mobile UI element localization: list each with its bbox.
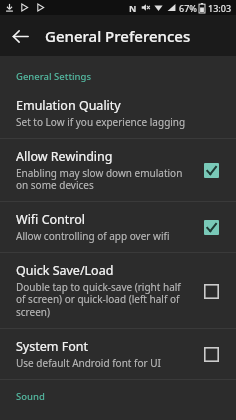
button[interactable]: Back — [0, 16, 40, 56]
staticText: Double tap to quick-save (right half of … — [16, 280, 190, 319]
staticText: Allow controlling of app over wifi — [16, 229, 170, 243]
staticText: Use default Android font for UI — [16, 356, 161, 370]
staticText: Enabling may slow down emulation on some… — [16, 166, 190, 192]
staticText: 67% — [179, 2, 197, 14]
staticText: 13:03 — [208, 2, 232, 14]
staticText: Allow Rewinding — [16, 148, 113, 165]
button[interactable]: Emulation Quality — [0, 88, 236, 138]
staticText: System Font — [16, 338, 89, 355]
button[interactable]: Wifi Control — [0, 202, 236, 252]
button[interactable]: Checked — [198, 214, 224, 240]
button[interactable]: Quick Save/Load — [0, 253, 236, 328]
button[interactable]: System Font — [0, 329, 236, 379]
staticText: N — [129, 2, 137, 14]
staticText: Emulation Quality — [16, 97, 121, 114]
staticText: Wifi Control — [16, 211, 86, 228]
staticText: General Settings — [16, 70, 92, 83]
staticText: Set to Low if you experience lagging — [16, 115, 186, 129]
staticText: Quick Save/Load — [16, 262, 114, 279]
button[interactable]: Unchecked — [198, 341, 224, 367]
staticText: Sound — [16, 390, 45, 403]
staticText: General Preferences — [45, 26, 191, 46]
button[interactable]: Unchecked — [198, 278, 224, 304]
button[interactable]: Checked — [198, 157, 224, 183]
button[interactable]: Allow Rewinding — [0, 139, 236, 201]
